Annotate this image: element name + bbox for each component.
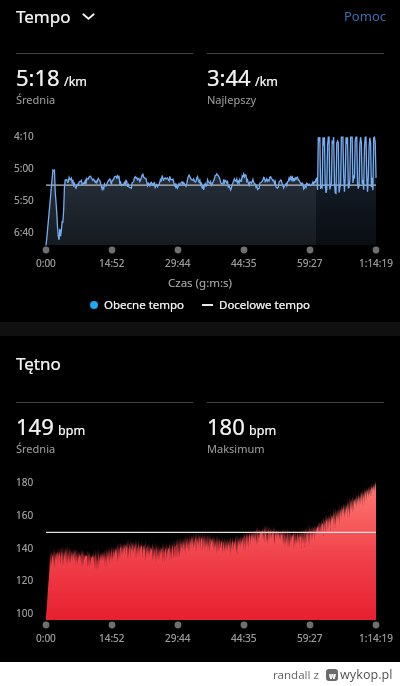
staticText: 14:52 <box>99 631 125 645</box>
staticText: Tętno <box>16 352 61 375</box>
staticText: 140 <box>16 541 34 555</box>
staticText: Obecne tempo <box>104 297 185 313</box>
staticText: Docelowe tempo <box>219 297 310 313</box>
staticText: 0:00 <box>36 256 56 270</box>
staticText: 6:40 <box>14 225 34 239</box>
staticText: /km <box>64 73 88 90</box>
other: Change metric <box>82 12 95 21</box>
staticText: 160 <box>16 508 34 522</box>
staticText: 0:00 <box>36 631 56 645</box>
staticText: 59:27 <box>297 631 323 645</box>
staticText: Tempo <box>16 5 71 28</box>
staticText: Czas (g:m:s) <box>168 275 233 291</box>
staticText: 29:44 <box>165 631 191 645</box>
staticText: Średnia <box>16 92 56 107</box>
staticText: 1:14:19 <box>359 631 393 645</box>
button[interactable]: 180 <box>207 402 384 456</box>
staticText: 100 <box>16 606 34 620</box>
button[interactable]: 5:18 <box>16 53 193 107</box>
staticText: 180 <box>16 475 34 489</box>
staticText: 59:27 <box>297 256 323 270</box>
staticText: 5:00 <box>14 161 34 175</box>
staticText: Maksimum <box>207 441 265 456</box>
staticText: 44:35 <box>231 631 257 645</box>
staticText: 5:18 <box>16 62 60 92</box>
staticText: 4:10 <box>14 129 34 143</box>
staticText: 29:44 <box>165 256 191 270</box>
staticText: w <box>329 670 336 681</box>
staticText: wykop.pl <box>340 666 393 683</box>
staticText: Średnia <box>16 441 56 456</box>
staticText: 180 <box>207 411 245 441</box>
staticText: 5:50 <box>14 193 34 207</box>
staticText: 1:14:19 <box>359 256 393 270</box>
button[interactable]: Tempo <box>16 3 101 30</box>
staticText: 14:52 <box>99 256 125 270</box>
staticText: 120 <box>16 573 34 587</box>
button[interactable]: Pomoc <box>330 2 400 30</box>
staticText: 149 <box>16 411 54 441</box>
staticText: /km <box>255 73 279 90</box>
button[interactable]: 3:44 <box>207 53 384 107</box>
staticText: Najlepszy <box>207 92 257 107</box>
staticText: Pomoc <box>344 7 386 25</box>
staticText: 44:35 <box>231 256 257 270</box>
button[interactable]: 149 <box>16 402 193 456</box>
staticText: bpm <box>249 422 277 439</box>
staticText: bpm <box>58 422 86 439</box>
staticText: randall z <box>273 667 319 683</box>
staticText: 3:44 <box>207 62 251 92</box>
